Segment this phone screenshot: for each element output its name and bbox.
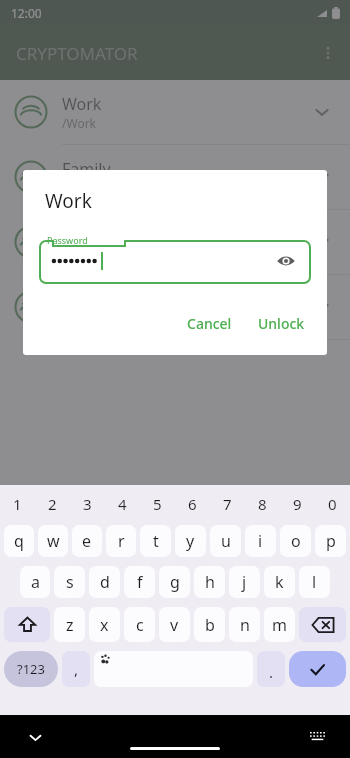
staticText: k [275, 571, 284, 593]
button[interactable]: r [106, 525, 136, 557]
button[interactable]: b [194, 607, 225, 642]
button[interactable]: 1 [0, 489, 35, 519]
button[interactable]: 3 [70, 489, 105, 519]
staticText: 7 [223, 494, 232, 514]
button[interactable]: x [89, 607, 120, 642]
button[interactable]: Expand [300, 220, 344, 264]
button[interactable]: Expand [300, 90, 344, 134]
button[interactable]: 4 [105, 489, 140, 519]
staticText: s [66, 571, 74, 593]
staticText: 5 [153, 494, 162, 514]
staticText: w [47, 530, 60, 552]
button[interactable]: 8 [245, 489, 280, 519]
button[interactable]: 9 [280, 489, 315, 519]
staticText: a [31, 571, 40, 593]
button[interactable]: i [245, 525, 276, 557]
button[interactable]: Docs [0, 275, 350, 339]
button[interactable]: 6 [175, 489, 210, 519]
button[interactable]: v [159, 607, 190, 642]
button[interactable]: e [72, 525, 102, 557]
staticText: 8 [258, 494, 267, 514]
staticText: x [100, 614, 109, 636]
staticText: 1 [13, 494, 22, 514]
button[interactable]: g [159, 566, 190, 598]
button[interactable]: y [175, 525, 206, 557]
button[interactable]: ?123 [4, 651, 58, 687]
staticText: e [82, 530, 92, 552]
staticText: m [272, 614, 287, 636]
button[interactable]: Expand [300, 285, 344, 329]
staticText: Work [45, 188, 92, 214]
staticText: i [258, 530, 263, 552]
staticText: h [205, 571, 215, 593]
button[interactable]: Cancel [177, 306, 242, 341]
button[interactable]: f [124, 566, 155, 598]
staticText: j [242, 571, 247, 593]
button[interactable]: 0 [315, 489, 350, 519]
staticText: /Photos [62, 245, 106, 261]
button[interactable]: k [264, 566, 295, 598]
staticText: 0 [328, 494, 337, 514]
button[interactable]: m [264, 607, 295, 642]
button[interactable]: Work [0, 80, 350, 144]
button[interactable]: t [140, 525, 171, 557]
button[interactable]: 5 [140, 489, 175, 519]
button[interactable]: a [20, 566, 50, 598]
staticText: t [153, 530, 159, 552]
staticText: c [136, 614, 144, 636]
button[interactable]: p [315, 525, 346, 557]
staticText: q [14, 530, 24, 552]
staticText: /Work [62, 115, 97, 131]
button[interactable]: s [54, 566, 85, 598]
button[interactable]: Comma [62, 651, 90, 687]
button[interactable]: Expand [300, 155, 344, 199]
button[interactable]: Switch keyboard [304, 724, 330, 750]
staticText: v [170, 614, 179, 636]
button[interactable]: u [210, 525, 241, 557]
button[interactable]: l [299, 566, 330, 598]
staticText: d [100, 571, 110, 593]
staticText: n [240, 614, 250, 636]
staticText: u [221, 530, 231, 552]
staticText: 4 [118, 494, 127, 514]
button[interactable]: 7 [210, 489, 245, 519]
button[interactable]: Photos [0, 210, 350, 274]
button[interactable]: Enter [289, 651, 346, 687]
staticText: Photos [62, 223, 115, 245]
button[interactable]: Unlock [248, 306, 315, 341]
staticText: Family [62, 158, 111, 180]
button[interactable]: Backspace [299, 607, 346, 642]
button[interactable]: 2 [35, 489, 70, 519]
staticText: z [66, 614, 74, 636]
staticText: 12:00 [11, 5, 42, 21]
staticText: 9 [293, 494, 302, 514]
button[interactable]: c [124, 607, 155, 642]
staticText: 6 [188, 494, 197, 514]
staticText: CRYPTOMATOR [16, 42, 138, 65]
button[interactable]: Space [94, 651, 253, 687]
staticText: Password [47, 234, 88, 246]
staticText: 2 [48, 494, 57, 514]
button[interactable]: w [38, 525, 68, 557]
staticText: r [118, 530, 125, 552]
button[interactable]: h [194, 566, 225, 598]
button[interactable]: j [229, 566, 260, 598]
button[interactable]: Family [0, 145, 350, 209]
button[interactable]: Period [257, 651, 285, 687]
button[interactable]: o [280, 525, 311, 557]
button[interactable]: q [4, 525, 34, 557]
button[interactable]: d [89, 566, 120, 598]
staticText: . [269, 662, 274, 682]
button[interactable]: Hide keyboard [22, 724, 48, 750]
button[interactable]: z [54, 607, 85, 642]
staticText: o [291, 530, 301, 552]
staticText: g [170, 571, 180, 593]
staticText: Work [62, 93, 102, 115]
button[interactable]: n [229, 607, 260, 642]
staticText: f [137, 571, 143, 593]
button[interactable]: Show password [269, 244, 303, 278]
button[interactable]: Shift [4, 607, 50, 642]
